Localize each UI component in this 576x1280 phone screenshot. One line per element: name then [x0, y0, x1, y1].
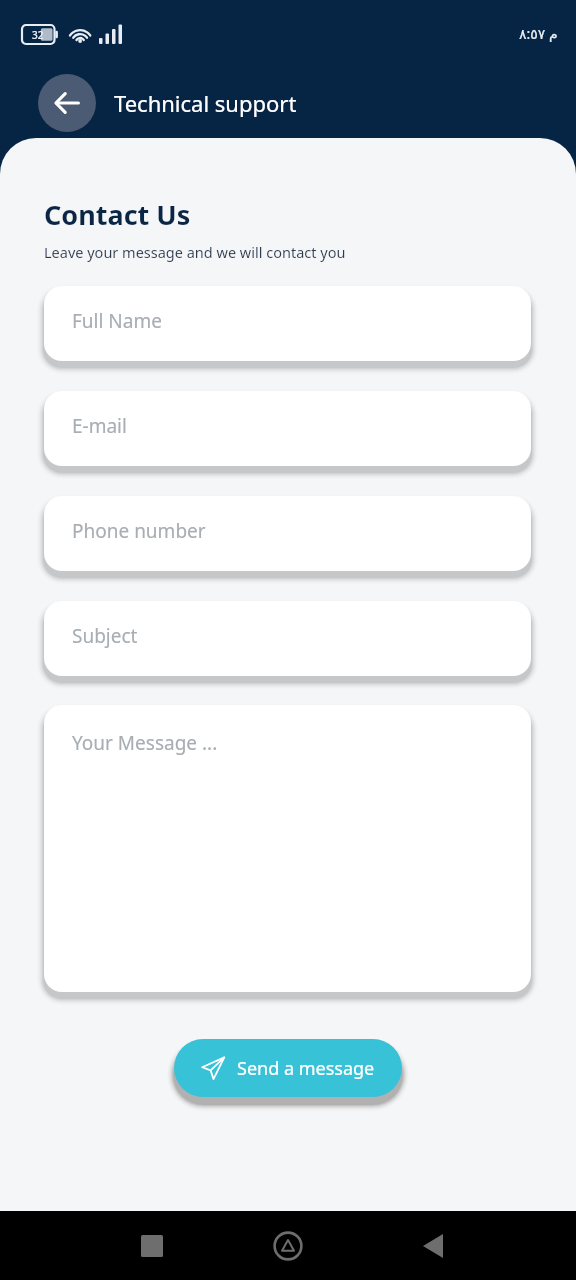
staticText: Your Message ... [72, 730, 218, 756]
other: Recent apps [141, 1235, 163, 1257]
staticText: E-mail [72, 413, 127, 439]
button[interactable]: Full Name [44, 286, 531, 361]
button[interactable]: Send a message [174, 1039, 402, 1097]
button[interactable]: Your Message ... [44, 705, 531, 992]
staticText: 32 [32, 28, 44, 42]
staticText: Contact Us [44, 196, 191, 233]
staticText: Full Name [72, 308, 162, 334]
button[interactable]: E-mail [44, 391, 531, 466]
staticText: م ٨:٥٧ [519, 24, 558, 43]
other: Home [273, 1231, 303, 1261]
other: Back [423, 1234, 443, 1258]
button[interactable]: Subject [44, 601, 531, 676]
button[interactable]: Back [38, 74, 96, 132]
staticText: Leave your message and we will contact y… [44, 242, 346, 262]
staticText: Phone number [72, 518, 206, 544]
staticText: Send a message [237, 1056, 375, 1081]
staticText: Subject [72, 623, 138, 649]
staticText: Technical support [114, 88, 297, 118]
button[interactable]: Phone number [44, 496, 531, 571]
